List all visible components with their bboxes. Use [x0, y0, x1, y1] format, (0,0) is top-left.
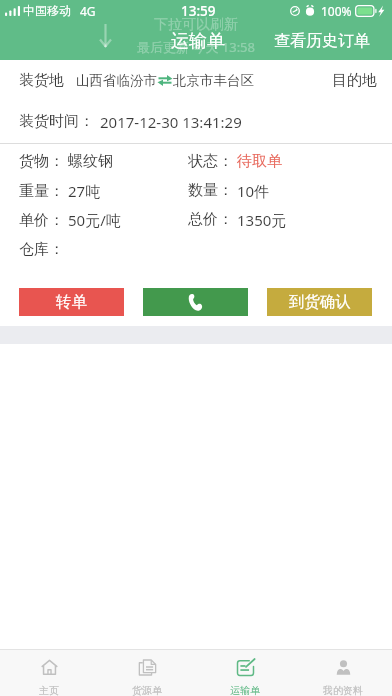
staticText: 运输单	[171, 30, 225, 53]
staticText: 100%	[321, 3, 352, 19]
staticText: 查看历史订单	[274, 31, 370, 51]
staticText: 下拉可以刷新	[154, 16, 238, 34]
staticText: 螺纹钢	[68, 152, 113, 171]
staticText: 总价：	[188, 210, 233, 229]
button[interactable]: 我的资料	[294, 650, 392, 696]
button[interactable]: 到货确认	[267, 288, 372, 316]
staticText: 运输单	[230, 684, 260, 696]
staticText: 待取单	[237, 152, 282, 171]
button[interactable]: 主页	[0, 650, 98, 696]
staticText: 主页	[39, 684, 59, 696]
staticText: 仓库：	[19, 240, 64, 259]
staticText: 1350元	[237, 210, 287, 230]
staticText: 单价：	[19, 211, 64, 230]
staticText: 2017-12-30 13:41:29	[100, 112, 242, 132]
staticText: 数量：	[188, 181, 233, 200]
staticText: 装货时间：	[19, 112, 94, 131]
staticText: 到货确认	[289, 292, 351, 312]
staticText: 货源单	[132, 684, 162, 696]
staticText: 转单	[56, 292, 87, 312]
button[interactable]: 运输单	[196, 650, 294, 696]
staticText: 最后更新 今天 13:58	[137, 38, 255, 56]
staticText: 50元/吨	[68, 210, 121, 230]
staticText: 山西省临汾市	[76, 72, 157, 89]
staticText: 状态：	[188, 152, 233, 171]
staticText: 中国移动	[23, 3, 71, 18]
staticText: 27吨	[68, 181, 101, 201]
staticText: 北京市丰台区	[173, 72, 254, 89]
button[interactable]: 拨打电话	[143, 288, 248, 316]
staticText: 4G	[80, 3, 96, 19]
button[interactable]: 货源单	[98, 650, 196, 696]
staticText: 我的资料	[323, 684, 363, 696]
staticText: 目的地	[332, 71, 377, 90]
staticText: 重量：	[19, 182, 64, 201]
button[interactable]: 转单	[19, 288, 124, 316]
staticText: 10件	[237, 181, 270, 201]
button[interactable]: 查看历史订单	[266, 22, 378, 60]
staticText: 货物：	[19, 152, 64, 171]
staticText: 装货地	[19, 71, 64, 90]
staticText: 13:59	[181, 2, 216, 20]
